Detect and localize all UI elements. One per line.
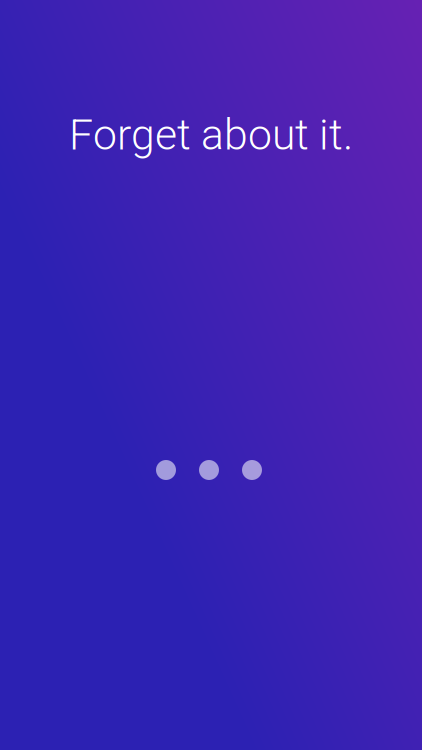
staticText: Forget about it. bbox=[69, 110, 353, 160]
